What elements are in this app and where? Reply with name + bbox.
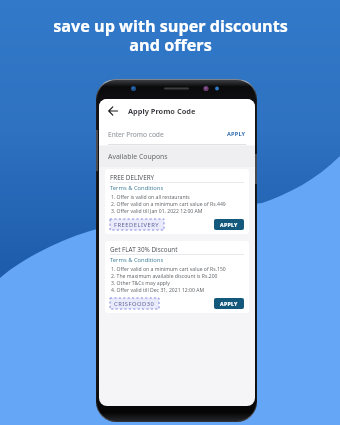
staticText: 3. Other T&Cs may apply: [111, 280, 170, 287]
button[interactable]: APPLY: [214, 298, 244, 309]
button[interactable]: FREEDELIVERY: [110, 219, 164, 230]
staticText: Apply Promo Code: [128, 106, 196, 116]
staticText: Terms & Conditions: [110, 184, 164, 192]
staticText: APPLY: [220, 300, 238, 307]
button[interactable]: Back: [106, 104, 119, 117]
button[interactable]: Get FLAT 30% Discount: [105, 241, 249, 313]
button[interactable]: APPLY: [227, 130, 246, 138]
staticText: APPLY: [227, 130, 246, 138]
staticText: Enter Promo code: [108, 130, 164, 139]
staticText: Get FLAT 30% Discount: [110, 245, 178, 254]
button[interactable]: APPLY: [214, 219, 244, 230]
staticText: save up with super discounts and offers: [53, 15, 288, 56]
staticText: Terms & Conditions: [110, 256, 164, 264]
staticText: 2. The maximum available discount is Rs.…: [111, 273, 218, 280]
staticText: CRISFOOD30: [114, 300, 155, 308]
staticText: APPLY: [220, 221, 238, 228]
staticText: 3. Offer valid till Jan 01, 2022 12:00 A…: [111, 208, 203, 215]
button[interactable]: CRISFOOD30: [110, 298, 159, 309]
staticText: FREE DELIVERY: [110, 173, 155, 182]
staticText: Available Coupons: [108, 152, 168, 161]
staticText: 2. Offer valid on a minimum cart value o…: [111, 201, 226, 208]
staticText: 4. Offer valid till Dec 31, 2021 12:00 A…: [111, 287, 205, 294]
button[interactable]: FREE DELIVERY: [105, 169, 249, 234]
staticText: 1. Offer valid on a minimum cart value o…: [111, 266, 226, 273]
staticText: FREEDELIVERY: [114, 221, 160, 229]
staticText: 1. Offer is valid on all restaurants: [111, 194, 190, 201]
